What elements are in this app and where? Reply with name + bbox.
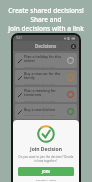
staticText: Buy a new car for the family [24,71,61,81]
staticText: Plan a holiday for this winter [24,54,62,64]
staticText: created 3 days ago · 4 votes [24,82,56,85]
button[interactable]: Account [70,43,76,49]
staticText: 9:41 [16,36,22,40]
staticText: created 3 days ago · 4 votes [24,113,56,116]
staticText: Plan a meeting for tomorrow [24,88,56,98]
button[interactable]: Buy a new kitchen [15,104,77,119]
button[interactable]: Plan a holiday for this winter [15,53,77,68]
button[interactable]: Buy a new car for the family [15,70,77,85]
staticText: JOIN [42,169,50,174]
staticText: Create shared decisions! Share and join … [0,6,92,33]
staticText: Buy a new kitchen [24,107,56,112]
staticText: created 3 days ago · 4 votes [24,65,56,68]
button[interactable]: JOIN [18,167,74,176]
staticText: MAYBE LATER [36,180,56,181]
staticText: created 3 days ago · 4 votes [24,99,56,102]
staticText: Do you want to join the decision? Decide… [18,155,74,163]
staticText: Decisions [35,43,57,49]
staticText: Join Decision [30,146,62,153]
button[interactable]: Plan a meeting for tomorrow [15,87,77,102]
button[interactable]: MAYBE LATER [33,179,59,182]
